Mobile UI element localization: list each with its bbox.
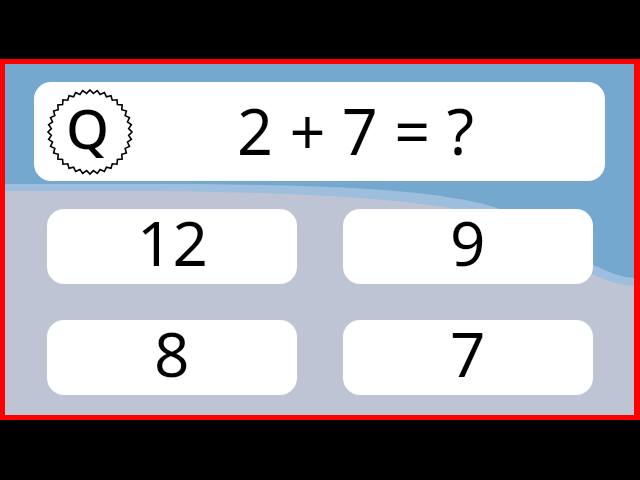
staticText: 9 — [450, 209, 486, 275]
staticText: 2 + 7 = ? — [237, 88, 475, 174]
staticText: Q — [66, 90, 110, 165]
button[interactable]: Question badge — [34, 82, 605, 181]
button[interactable]: 12 — [47, 209, 297, 284]
staticText: 12 — [137, 209, 208, 275]
staticText: 7 — [450, 320, 486, 386]
other: Question badge — [47, 89, 133, 175]
button[interactable]: 8 — [47, 320, 297, 395]
button[interactable]: 9 — [343, 209, 593, 284]
staticText: 8 — [154, 320, 190, 386]
button[interactable]: 7 — [343, 320, 593, 395]
